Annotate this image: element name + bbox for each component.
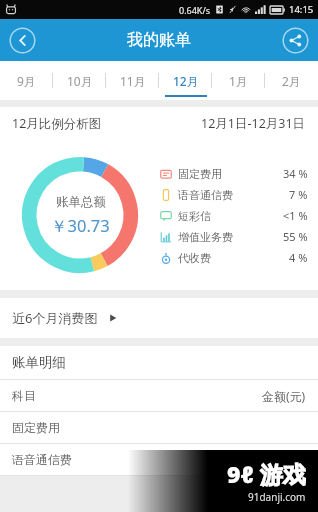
staticText: 0.64K/s [179,4,211,16]
button[interactable]: 代收费 [160,250,308,265]
button[interactable]: 固定费用 [160,166,308,181]
staticText: 科目 [12,388,36,403]
staticText: 金额(元) [262,388,306,404]
staticText: 固定费用 [12,420,60,435]
button[interactable]: Back [9,27,36,54]
staticText: 11月 [120,73,146,89]
button[interactable]: 11月 [106,61,159,100]
staticText: 14:15 [289,3,314,16]
button[interactable]: 增值业务费 [160,229,308,244]
button[interactable]: 1月 [212,61,265,100]
staticText: 7 % [289,187,308,202]
staticText: 语音通信费 [12,452,72,467]
staticText: 12月1日-12月31日 [201,115,306,132]
staticText: 4 % [289,250,308,265]
staticText: 9ℓ 游戏 [227,458,306,489]
staticText: 语音通信费 [178,188,233,202]
staticText: 1月 [229,73,248,89]
staticText: ￥30.73 [51,214,110,237]
staticText: 9月 [17,73,36,89]
button[interactable]: 12月 [159,61,212,100]
staticText: 10月 [67,73,93,89]
button[interactable]: 9月 [0,61,53,100]
staticText: 代收费 [178,251,211,265]
button[interactable]: 2月 [265,61,318,100]
staticText: <1 % [283,208,308,223]
staticText: 近6个月消费图 [12,309,98,327]
staticText: 账单明细 [12,354,66,371]
button[interactable]: 10月 [53,61,106,100]
staticText: 91danji.com [248,490,306,504]
button[interactable]: Share [282,27,309,54]
staticText: 12月比例分析图 [12,115,102,132]
staticText: 短彩信 [178,209,211,223]
staticText: 增值业务费 [178,230,233,244]
button[interactable]: 短彩信 [160,208,308,223]
staticText: 我的账单 [127,30,191,50]
staticText: 2月 [282,73,301,89]
staticText: 34 % [283,166,308,181]
staticText: 固定费用 [178,167,222,181]
staticText: 55 % [283,229,308,244]
button[interactable]: 语音通信费 [160,187,308,202]
button[interactable]: 固定费用 [0,412,318,443]
staticText: 账单总额 [56,194,106,210]
button[interactable]: 近6个月消费图 [0,298,318,338]
button[interactable]: 语音通信费 [0,444,318,475]
staticText: 12月 [173,73,199,89]
